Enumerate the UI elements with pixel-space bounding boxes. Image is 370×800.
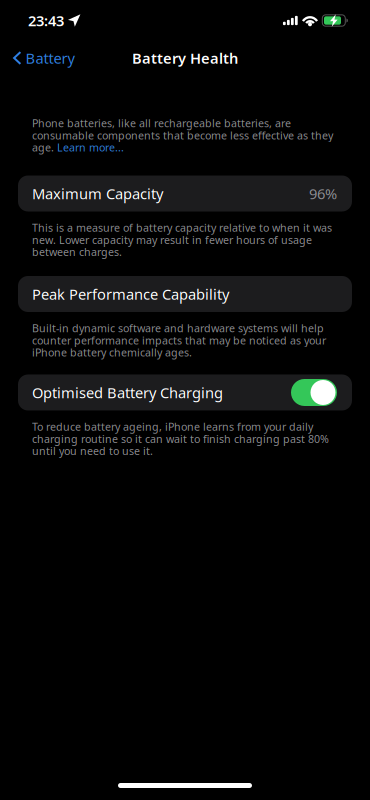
staticText: Phone batteries, like all rechargeable b… bbox=[32, 116, 291, 130]
button[interactable]: Maximum Capacity bbox=[18, 175, 352, 211]
button[interactable]: Learn more... bbox=[57, 140, 124, 154]
staticText: Battery bbox=[25, 48, 74, 68]
staticText: iPhone battery chemically ages. bbox=[32, 345, 192, 359]
staticText: Peak Performance Capability bbox=[32, 284, 229, 304]
staticText: charging routine so it can wait to finis… bbox=[32, 432, 329, 446]
staticText: new. Lower capacity may result in fewer … bbox=[32, 233, 312, 247]
staticText: 96% bbox=[309, 184, 337, 203]
staticText: To reduce battery ageing, iPhone learns … bbox=[32, 419, 313, 434]
staticText: age. bbox=[32, 140, 57, 154]
staticText: counter performance impacts that may be … bbox=[32, 333, 326, 347]
staticText: Battery Health bbox=[132, 48, 238, 68]
button[interactable]: Optimised Battery Charging, on bbox=[291, 379, 337, 406]
button[interactable]: Back to Battery bbox=[0, 41, 82, 75]
staticText: 23:43 bbox=[28, 11, 64, 30]
staticText: Maximum Capacity bbox=[32, 184, 163, 203]
button[interactable]: Optimised Battery Charging bbox=[18, 374, 352, 410]
staticText: Learn more... bbox=[57, 140, 124, 154]
button[interactable]: Peak Performance Capability bbox=[18, 276, 352, 312]
staticText: Built-in dynamic software and hardware s… bbox=[32, 321, 324, 335]
staticText: Optimised Battery Charging bbox=[32, 383, 223, 402]
staticText: consumable components that become less e… bbox=[32, 128, 333, 142]
staticText: This is a measure of battery capacity re… bbox=[32, 220, 332, 235]
staticText: until you need to use it. bbox=[32, 444, 153, 458]
staticText: between charges. bbox=[32, 245, 122, 259]
